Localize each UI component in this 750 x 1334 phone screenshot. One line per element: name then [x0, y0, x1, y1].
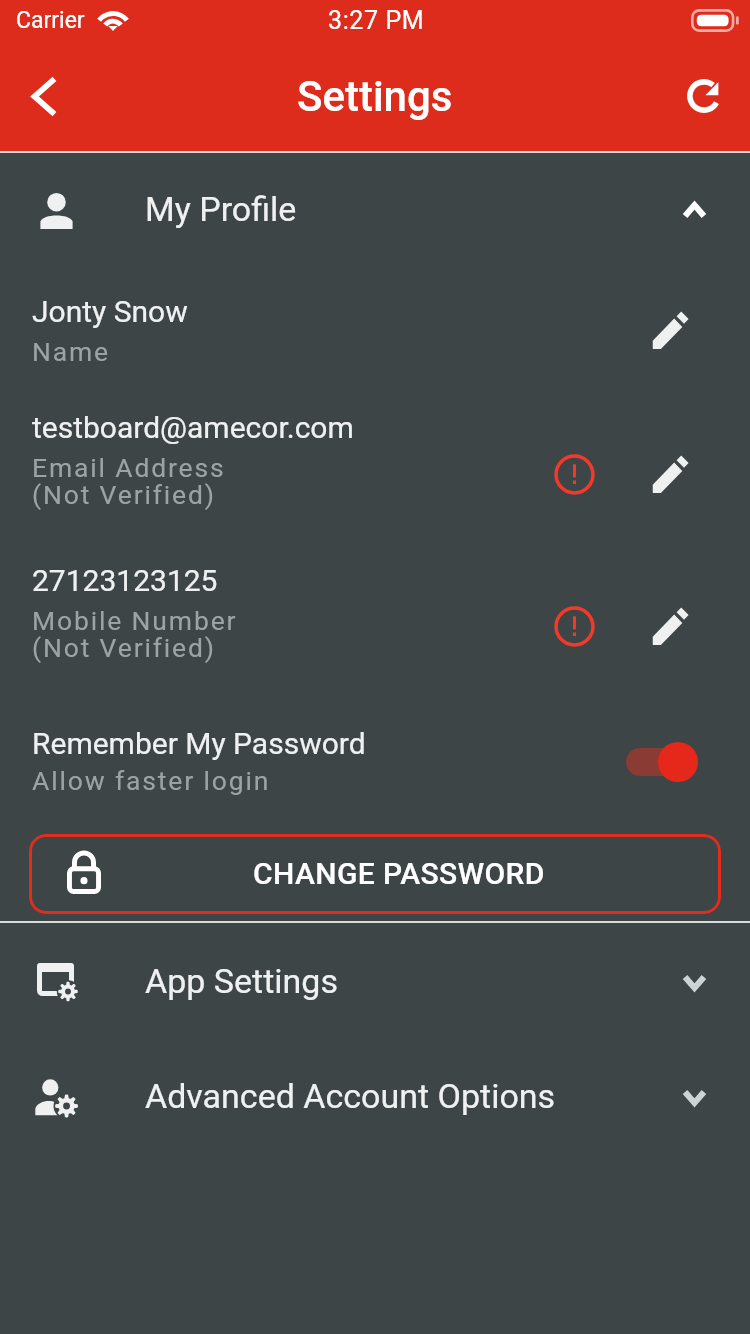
button[interactable]: 27123123125: [0, 558, 750, 676]
staticText: Mobile Number: [32, 605, 238, 636]
staticText: Allow faster login: [32, 765, 271, 796]
staticText: Carrier: [16, 7, 85, 34]
button[interactable]: Not verified: [542, 442, 606, 506]
staticText: Remember My Password: [32, 726, 366, 761]
button[interactable]: Jonty Snow: [0, 289, 750, 379]
staticText: (Not Verified): [32, 479, 216, 510]
button[interactable]: Remember my password toggle: [618, 736, 710, 788]
button[interactable]: testboard@amecor.com: [0, 405, 750, 523]
button[interactable]: Remember My Password: [0, 710, 750, 806]
button[interactable]: Not verified: [542, 594, 606, 658]
staticText: App Settings: [145, 961, 338, 1001]
staticText: (Not Verified): [32, 632, 216, 663]
staticText: CHANGE PASSWORD: [253, 856, 545, 891]
button[interactable]: Refresh: [666, 56, 750, 140]
staticText: Jonty Snow: [32, 294, 188, 329]
button[interactable]: CHANGE PASSWORD: [29, 834, 721, 914]
staticText: Email Address: [32, 452, 226, 483]
staticText: My Profile: [145, 189, 297, 229]
button[interactable]: Edit name: [638, 298, 702, 362]
staticText: Advanced Account Options: [145, 1076, 556, 1116]
staticText: 27123123125: [32, 563, 218, 598]
staticText: Settings: [297, 72, 453, 121]
button[interactable]: App Settings: [0, 925, 750, 1040]
staticText: testboard@amecor.com: [32, 410, 354, 445]
button[interactable]: Advanced Account Options: [0, 1040, 750, 1155]
button[interactable]: My Profile: [0, 153, 750, 268]
button[interactable]: Back: [0, 56, 84, 140]
staticText: Name: [32, 336, 111, 367]
button[interactable]: Edit mobile number: [638, 594, 702, 658]
button[interactable]: Edit email address: [638, 442, 702, 506]
staticText: 3:27 PM: [328, 6, 425, 35]
